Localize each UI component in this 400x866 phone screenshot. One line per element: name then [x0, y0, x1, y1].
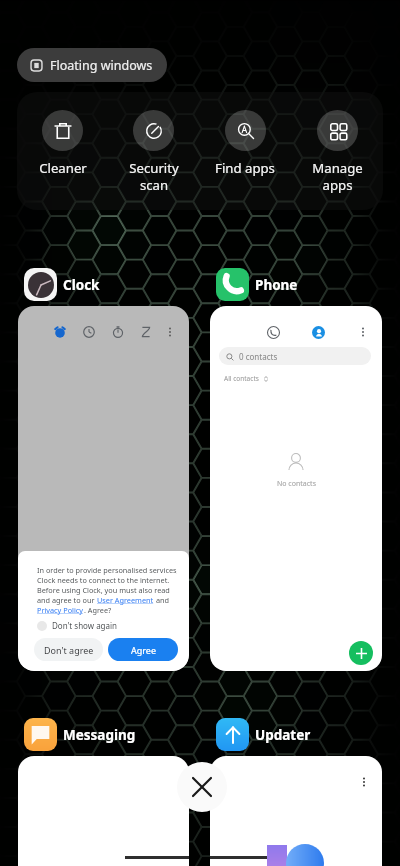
button[interactable]: Add contact — [349, 641, 373, 665]
staticText: Before using Clock, you must also read — [37, 585, 170, 595]
staticText: and agree to our — [37, 595, 97, 605]
button[interactable]: Messaging — [24, 718, 136, 751]
staticText: In order to provide personalised service… — [37, 565, 177, 575]
button[interactable]: Updater — [216, 718, 311, 751]
staticText: . Agree? — [84, 605, 112, 615]
button[interactable]: Floating windows — [17, 48, 167, 82]
button[interactable]: Phone — [216, 268, 298, 301]
button[interactable]: Find apps — [199, 92, 291, 177]
staticText: Manage apps — [312, 159, 363, 194]
button[interactable] — [312, 326, 325, 339]
staticText: Clock needs to connect to the internet. — [37, 575, 170, 585]
button[interactable]: In order to provide personalised service… — [18, 306, 189, 671]
staticText: Don't agree — [44, 644, 94, 656]
button[interactable]: 0 contacts — [219, 347, 371, 365]
button[interactable]: Don't agree — [34, 638, 103, 661]
staticText: Security scan — [129, 159, 179, 194]
staticText: Find apps — [215, 159, 275, 177]
staticText: User Agreement — [97, 595, 154, 605]
staticText: Phone — [255, 276, 298, 294]
button[interactable]: 0 contacts — [210, 306, 382, 671]
staticText: Don't show again — [52, 620, 118, 631]
staticText: Cleaner — [39, 159, 87, 177]
button[interactable] — [18, 756, 189, 866]
button[interactable]: Cleaner — [17, 92, 108, 177]
staticText: Updater — [255, 726, 311, 744]
staticText: 0 contacts — [239, 351, 278, 362]
staticText: Privacy Policy — [37, 605, 84, 615]
button[interactable]: Clock — [24, 268, 100, 301]
button[interactable] — [210, 756, 382, 866]
button[interactable]: Close all — [177, 762, 227, 812]
staticText: and — [154, 595, 169, 605]
button[interactable]: Agree — [108, 638, 178, 661]
staticText: All contacts — [224, 374, 259, 383]
staticText: Floating windows — [50, 57, 153, 74]
staticText: Clock — [63, 276, 100, 294]
staticText: Agree — [131, 644, 156, 656]
staticText: No contacts — [277, 479, 316, 489]
button[interactable]: Security scan — [108, 92, 199, 194]
staticText: Messaging — [63, 726, 136, 744]
button[interactable]: Manage apps — [291, 92, 383, 194]
